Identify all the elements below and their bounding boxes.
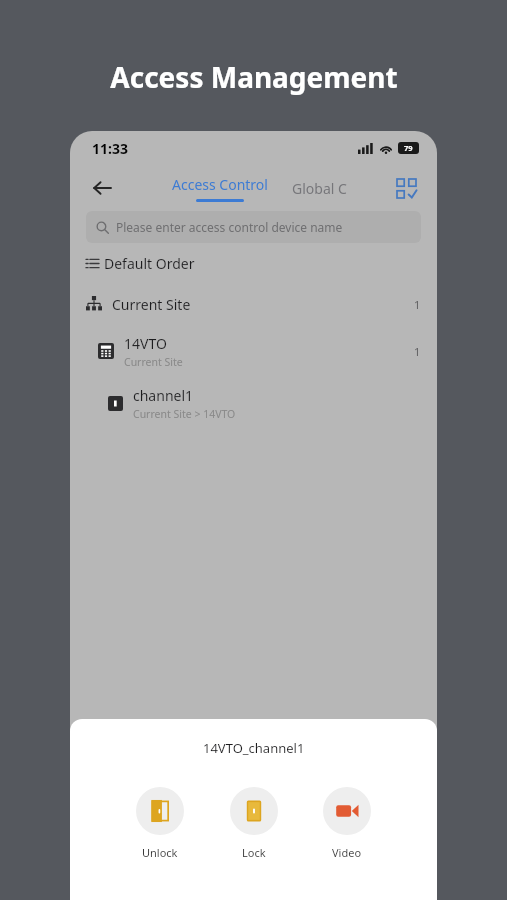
staticText: 1 [414, 297, 421, 312]
button[interactable]: 14VTO [70, 325, 437, 377]
button[interactable]: Access Control [170, 175, 270, 202]
button[interactable]: Current Site [70, 283, 437, 325]
staticText: Please enter access control device name [116, 219, 343, 235]
button[interactable]: Unlock [132, 783, 188, 864]
button[interactable]: Global C [290, 175, 349, 202]
staticText: Current Site [124, 355, 183, 369]
staticText: 79 [404, 143, 413, 153]
button[interactable]: Lock [226, 783, 282, 864]
staticText: Access Management [110, 58, 398, 96]
staticText: Global C [292, 179, 347, 198]
staticText: channel1 [133, 386, 194, 405]
button[interactable]: Please enter access control device name [86, 211, 421, 243]
button[interactable]: Scan [389, 171, 423, 205]
staticText: 14VTO_channel1 [203, 739, 305, 757]
button[interactable]: Video [319, 783, 375, 864]
staticText: 11:33 [92, 139, 128, 158]
staticText: 1 [414, 344, 421, 359]
button[interactable]: channel1 [70, 377, 437, 429]
staticText: Current Site > 14VTO [133, 407, 236, 421]
staticText: Lock [242, 845, 266, 860]
staticText: 14VTO [124, 334, 167, 353]
staticText: Access Control [172, 175, 268, 194]
staticText: Current Site [112, 295, 191, 314]
button[interactable]: Back [86, 172, 118, 204]
staticText: Unlock [142, 845, 178, 860]
staticText: Video [332, 845, 362, 860]
button[interactable]: Default Order [70, 243, 437, 283]
staticText: Default Order [104, 254, 195, 273]
